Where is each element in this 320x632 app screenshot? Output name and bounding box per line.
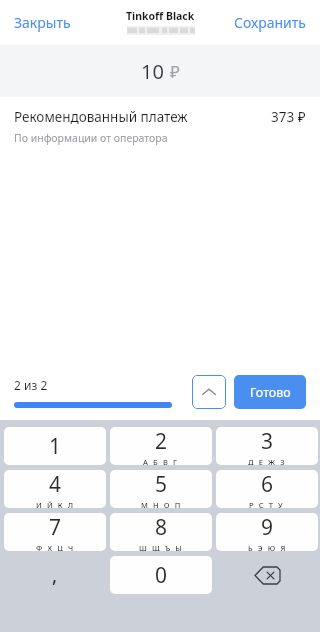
- staticText: Закрыть: [14, 13, 71, 32]
- button[interactable]: Закрыть: [6, 7, 79, 38]
- staticText: По информации от оператора: [14, 131, 168, 145]
- staticText: И Й К Л: [36, 500, 75, 508]
- staticText: Сохранить: [234, 13, 306, 32]
- staticText: 1: [49, 432, 62, 461]
- button[interactable]: 4: [4, 470, 106, 508]
- button[interactable]: 0: [110, 556, 212, 594]
- staticText: Ш Щ Ъ Ы: [139, 543, 184, 551]
- staticText: А Б В Г: [143, 457, 179, 465]
- staticText: 2: [155, 427, 168, 456]
- button[interactable]: 1: [4, 427, 106, 465]
- staticText: Ф Х Ц Ч: [36, 543, 75, 551]
- button[interactable]: 8: [110, 513, 212, 551]
- staticText: 4: [49, 470, 62, 499]
- staticText: 3: [261, 427, 274, 456]
- button[interactable]: 5: [110, 470, 212, 508]
- staticText: 5: [155, 470, 168, 499]
- staticText: М Н О П: [141, 500, 182, 508]
- button[interactable]: ,: [4, 556, 106, 594]
- staticText: 8: [155, 513, 168, 542]
- staticText: Р С Т У: [249, 500, 285, 508]
- button[interactable]: Вверх: [192, 375, 226, 409]
- button[interactable]: 3: [216, 427, 318, 465]
- button[interactable]: 7: [4, 513, 106, 551]
- button[interactable]: 2: [110, 427, 212, 465]
- button[interactable]: Рекомендованный платеж: [0, 97, 320, 153]
- staticText: 373 ₽: [271, 108, 306, 126]
- staticText: Д Е Ж З: [248, 457, 287, 465]
- staticText: Рекомендованный платеж: [14, 108, 188, 126]
- button[interactable]: 6: [216, 470, 318, 508]
- staticText: 10: [141, 58, 164, 85]
- staticText: 9: [261, 513, 274, 542]
- button[interactable]: Сохранить: [226, 7, 314, 38]
- staticText: ,: [52, 562, 58, 588]
- staticText: Готово: [250, 384, 291, 401]
- staticText: 6: [261, 470, 274, 499]
- staticText: ₽: [170, 60, 180, 83]
- staticText: 7: [49, 513, 62, 542]
- staticText: 0: [155, 561, 168, 590]
- staticText: Tinkoff Black: [126, 9, 195, 23]
- staticText: 2 из 2: [14, 377, 48, 393]
- button[interactable]: Удалить: [216, 556, 318, 594]
- button[interactable]: Готово: [234, 375, 306, 409]
- staticText: Ь Э Ю Я: [248, 543, 287, 551]
- button[interactable]: 9: [216, 513, 318, 551]
